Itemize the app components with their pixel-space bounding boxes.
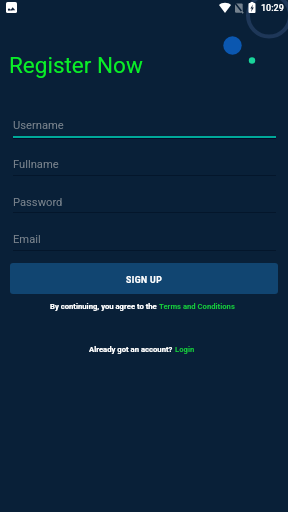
- staticText: Password: [13, 196, 63, 209]
- other: Image notification: [6, 2, 17, 13]
- other: No signal: [235, 3, 243, 13]
- button[interactable]: [12, 154, 276, 177]
- other: Battery charging: [248, 2, 256, 13]
- button[interactable]: SIGN UP: [10, 263, 278, 294]
- button[interactable]: [12, 229, 276, 252]
- staticText: Email: [13, 233, 41, 246]
- staticText: 10:29: [261, 3, 284, 14]
- button[interactable]: Login: [175, 345, 195, 354]
- staticText: Username: [13, 119, 64, 132]
- button[interactable]: [12, 192, 276, 215]
- other: Wi-Fi: [219, 3, 231, 13]
- staticText: SIGN UP: [126, 275, 163, 285]
- button[interactable]: Terms and Conditions: [159, 302, 235, 311]
- staticText: Register Now: [9, 52, 143, 78]
- staticText: By continuing, you agree to the: [50, 302, 159, 311]
- staticText: Already got an account?: [89, 345, 175, 354]
- button[interactable]: [12, 115, 276, 138]
- staticText: Fullname: [13, 158, 59, 171]
